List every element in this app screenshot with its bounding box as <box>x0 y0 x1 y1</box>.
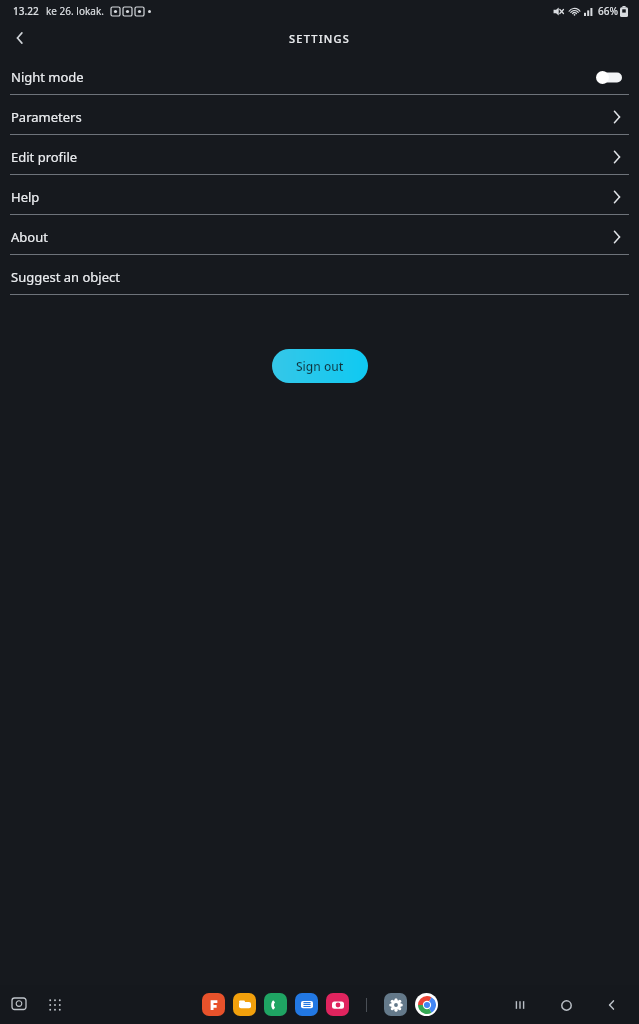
staticText: Edit profile <box>11 148 78 166</box>
button[interactable]: Home <box>553 992 579 1018</box>
staticText: About <box>11 228 48 246</box>
button[interactable]: Chrome <box>415 993 438 1016</box>
button[interactable]: App <box>295 993 318 1016</box>
button[interactable]: App <box>326 993 349 1016</box>
button[interactable]: Back <box>599 992 625 1018</box>
staticText: Night mode <box>11 68 84 86</box>
staticText: SETTINGS <box>289 31 350 46</box>
button[interactable]: Recents <box>6 992 32 1018</box>
button[interactable]: Parameters <box>0 100 639 140</box>
staticText: 13.22 <box>13 4 39 18</box>
button[interactable]: Sign out <box>272 349 368 383</box>
staticText: Parameters <box>11 108 82 126</box>
button[interactable]: App <box>384 993 407 1016</box>
button[interactable]: App <box>233 993 256 1016</box>
staticText: ke 26. lokak. <box>46 4 104 18</box>
button[interactable]: Night mode toggle <box>596 71 622 84</box>
staticText: Sign out <box>296 358 344 374</box>
staticText: 66% <box>598 4 618 18</box>
button[interactable]: About <box>0 220 639 260</box>
button[interactable]: Edit profile <box>0 140 639 180</box>
button[interactable]: Apps <box>42 992 68 1018</box>
button[interactable]: Help <box>0 180 639 220</box>
button[interactable]: App <box>202 993 225 1016</box>
button[interactable]: App <box>264 993 287 1016</box>
button[interactable]: Back <box>0 22 40 54</box>
staticText: Help <box>11 188 40 206</box>
button[interactable]: Night mode <box>0 60 639 100</box>
staticText: Suggest an object <box>11 268 120 286</box>
button[interactable]: Recent apps <box>507 992 533 1018</box>
button[interactable]: Suggest an object <box>0 260 639 300</box>
